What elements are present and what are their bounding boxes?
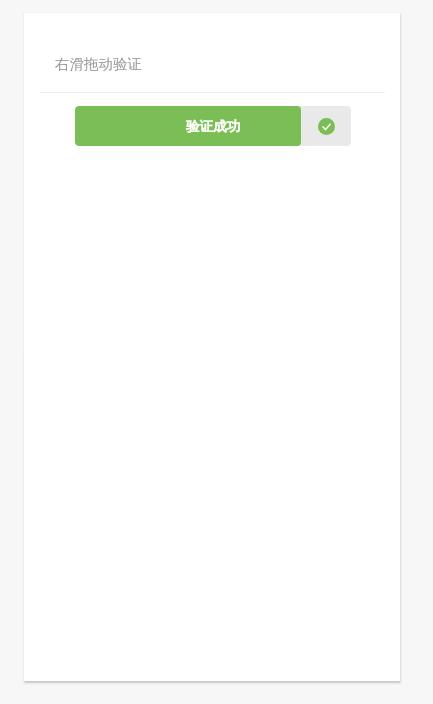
staticText: 验证成功 bbox=[186, 118, 240, 135]
other: Verification successful bbox=[318, 118, 335, 135]
button[interactable]: 验证成功 bbox=[75, 106, 351, 146]
staticText: 右滑拖动验证 bbox=[55, 55, 142, 73]
